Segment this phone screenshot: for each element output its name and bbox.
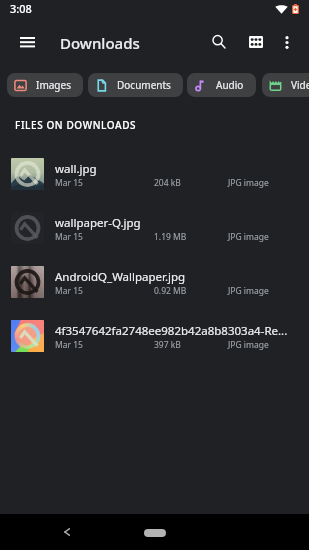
staticText: wall.jpg bbox=[55, 161, 97, 177]
staticText: JPG image bbox=[228, 231, 269, 243]
staticText: 0.92 MB bbox=[154, 285, 187, 297]
button[interactable]: Audio bbox=[187, 73, 256, 97]
staticText: FILES ON DOWNLOADS bbox=[15, 118, 137, 132]
button[interactable]: 4f3547642fa2748ee982b42a8b8303a4-Re... bbox=[0, 309, 309, 363]
staticText: Mar 15 bbox=[55, 177, 83, 189]
button[interactable]: Images bbox=[7, 73, 83, 97]
button[interactable]: More options bbox=[272, 28, 301, 57]
staticText: Mar 15 bbox=[55, 285, 83, 297]
staticText: 1.19 MB bbox=[154, 231, 187, 243]
button[interactable]: Videos bbox=[262, 73, 309, 97]
staticText: Downloads bbox=[60, 33, 140, 53]
staticText: 204 kB bbox=[154, 177, 181, 189]
staticText: JPG image bbox=[228, 285, 269, 297]
staticText: 3:08 bbox=[10, 1, 32, 16]
button[interactable]: Back bbox=[53, 523, 81, 541]
staticText: Audio bbox=[216, 78, 244, 92]
button[interactable]: Documents bbox=[88, 73, 183, 97]
staticText: Documents bbox=[117, 78, 171, 92]
staticText: Mar 15 bbox=[55, 231, 83, 243]
staticText: JPG image bbox=[228, 177, 269, 189]
button[interactable]: Open navigation drawer bbox=[13, 27, 42, 56]
button[interactable]: Grid view bbox=[241, 27, 270, 56]
staticText: Videos bbox=[291, 78, 309, 92]
button[interactable]: Home bbox=[144, 529, 166, 537]
staticText: JPG image bbox=[228, 339, 269, 351]
staticText: AndroidQ_Wallpaper.jpg bbox=[55, 269, 186, 285]
button[interactable]: Search bbox=[204, 27, 233, 56]
button[interactable]: wall.jpg bbox=[0, 147, 309, 201]
staticText: 397 kB bbox=[154, 339, 181, 351]
staticText: Images bbox=[36, 78, 71, 92]
button[interactable]: wallpaper-Q.jpg bbox=[0, 201, 309, 255]
staticText: 4f3547642fa2748ee982b42a8b8303a4-Re... bbox=[55, 323, 288, 339]
staticText: wallpaper-Q.jpg bbox=[55, 215, 141, 231]
staticText: Mar 15 bbox=[55, 339, 83, 351]
button[interactable]: AndroidQ_Wallpaper.jpg bbox=[0, 255, 309, 309]
